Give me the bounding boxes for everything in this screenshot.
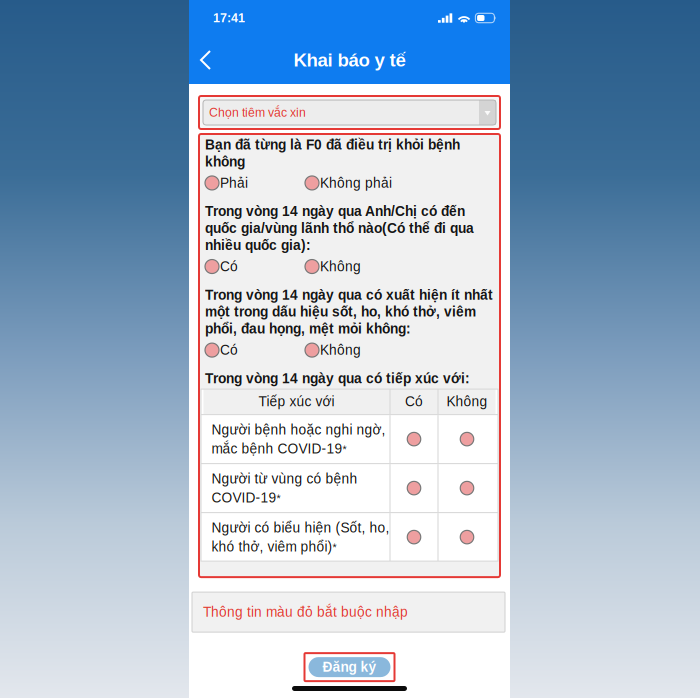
staticText: Khai báo y tế (293, 50, 405, 70)
button[interactable]: Back (189, 36, 223, 84)
staticText: mắc bệnh COVID-19* (211, 441, 346, 456)
staticText: Có (220, 342, 238, 358)
staticText: Trong vòng 14 ngày qua Anh/Chị có đến qu… (205, 204, 474, 253)
button[interactable]: Có (205, 259, 238, 274)
button[interactable]: Không (305, 342, 361, 358)
staticText: Chọn tiêm vắc xin (209, 106, 306, 119)
button[interactable]: Phải (205, 175, 248, 191)
button[interactable]: Có (390, 415, 437, 463)
staticText: Người bệnh hoặc nghi ngờ, (211, 422, 385, 437)
button[interactable]: Không (305, 259, 361, 274)
button[interactable]: Có (205, 342, 238, 358)
staticText: Không (446, 394, 487, 409)
staticText: Người có biểu hiện (Sốt, ho, (211, 520, 389, 535)
staticText: khó thở, viêm phổi)* (211, 539, 336, 554)
staticText: Có (405, 394, 423, 409)
button[interactable]: Có (390, 513, 437, 561)
staticText: Đăng ký (322, 659, 376, 675)
staticText: Người từ vùng có bệnh (211, 471, 357, 486)
button[interactable]: Chọn tiêm vắc xin (199, 96, 500, 129)
staticText: Không (320, 259, 361, 274)
staticText: Không phải (320, 175, 392, 191)
staticText: Phải (220, 175, 248, 191)
staticText: COVID-19* (211, 490, 280, 505)
button[interactable]: Có (390, 464, 437, 512)
staticText: Có (220, 259, 238, 274)
button[interactable]: Không (438, 513, 495, 561)
staticText: Thông tin màu đỏ bắt buộc nhập (203, 604, 408, 620)
staticText: Trong vòng 14 ngày qua có xuất hiện ít n… (205, 287, 493, 336)
staticText: 17:41 (213, 11, 245, 25)
button[interactable]: Đăng ký (304, 653, 394, 681)
button[interactable]: Không (438, 415, 495, 463)
staticText: Bạn đã từng là F0 đã điều trị khỏi bệnh … (205, 137, 460, 169)
staticText: Trong vòng 14 ngày qua có tiếp xúc với: (205, 371, 470, 386)
button[interactable]: Không phải (305, 175, 392, 191)
staticText: Tiếp xúc với (258, 394, 334, 409)
button[interactable]: Không (438, 464, 495, 512)
staticText: Không (320, 342, 361, 358)
